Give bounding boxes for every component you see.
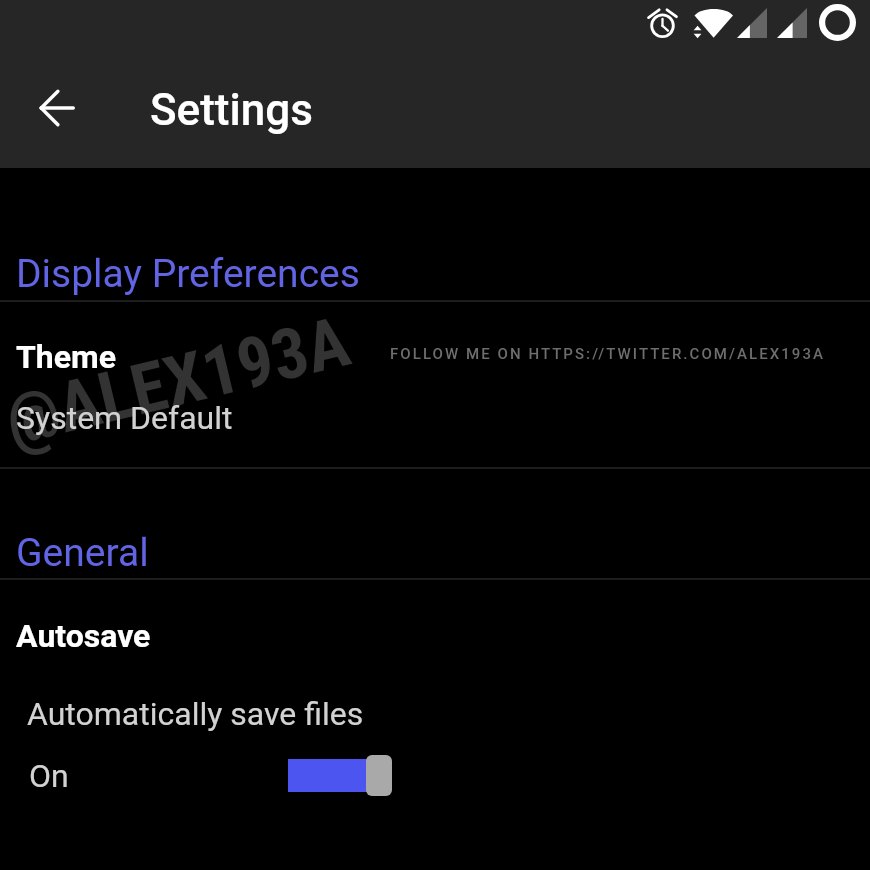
button[interactable]: Autosave on — [0, 742, 870, 810]
staticText: Automatically save files — [27, 695, 364, 733]
staticText: Settings — [150, 84, 313, 136]
staticText: Display Preferences — [16, 251, 360, 297]
staticText: FOLLOW ME ON HTTPS://TWITTER.COM/ALEX193… — [390, 345, 825, 363]
button[interactable]: Back — [18, 70, 94, 146]
staticText: System Default — [16, 399, 233, 437]
staticText: General — [16, 530, 149, 576]
staticText: Autosave — [16, 617, 151, 655]
staticText: On — [29, 757, 69, 795]
staticText: Theme — [16, 338, 117, 376]
button[interactable]: @ALEX193A — [0, 302, 870, 468]
staticText: @ALEX193A — [0, 300, 358, 462]
